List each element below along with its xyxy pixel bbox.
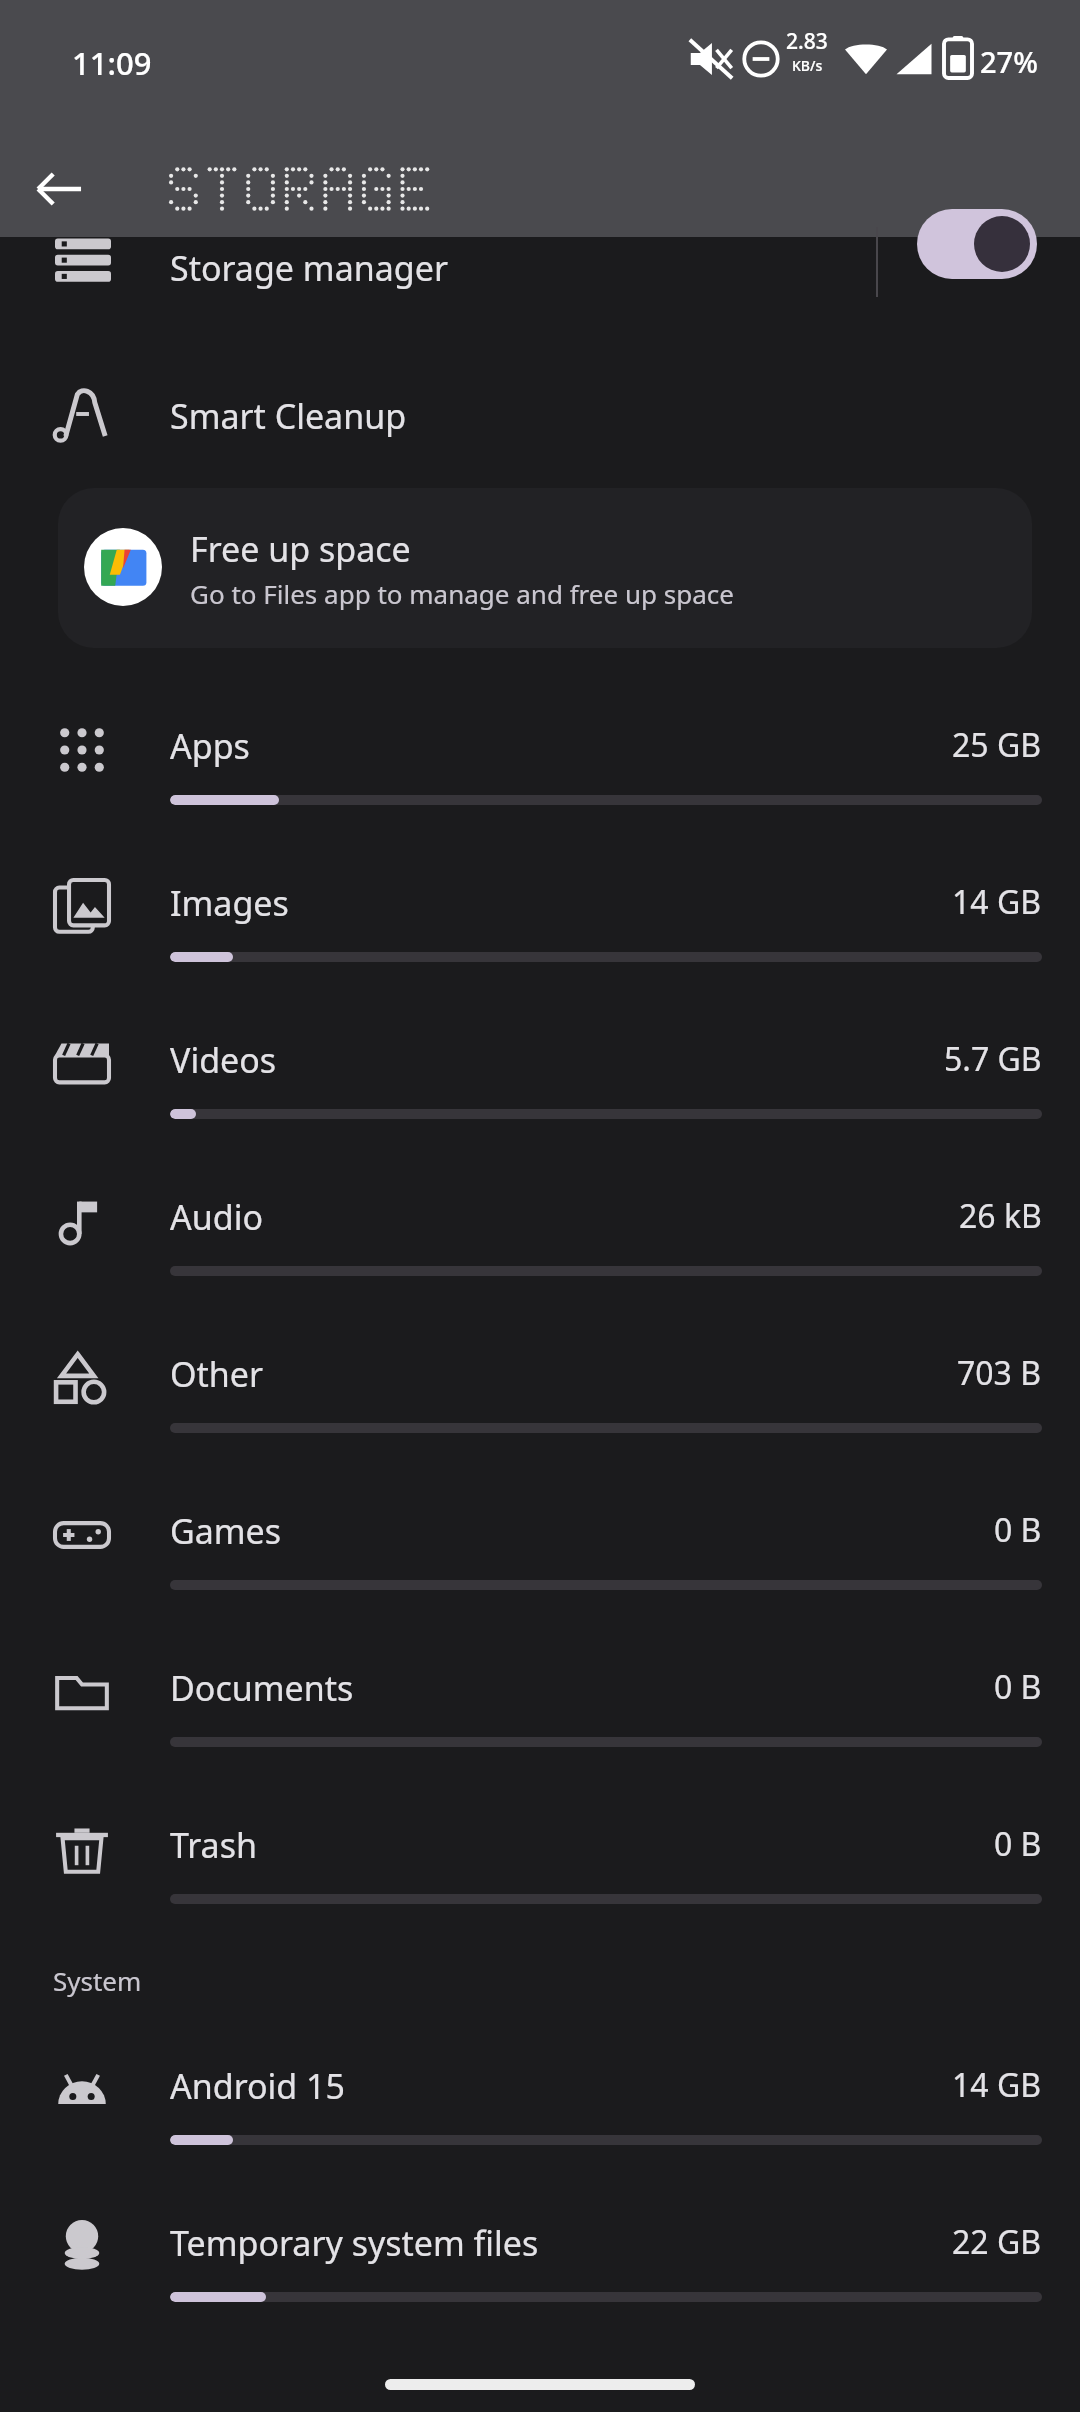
staticText: 2.83	[786, 27, 828, 56]
staticText: 5.7 GB	[944, 1037, 1042, 1081]
staticText: Go to Files app to manage and free up sp…	[190, 576, 734, 611]
button[interactable]: Storage manager toggle	[917, 209, 1037, 279]
button[interactable]: Free up space	[58, 488, 1032, 648]
staticText: Temporary system files	[170, 2220, 539, 2266]
staticText: Games	[170, 1508, 282, 1554]
button[interactable]: Videos	[0, 999, 1080, 1156]
staticText: 27%	[980, 42, 1038, 81]
staticText: 0 B	[994, 1665, 1042, 1709]
staticText: 14 GB	[952, 880, 1042, 924]
staticText: System	[53, 1963, 142, 1998]
button[interactable]: Documents	[0, 1627, 1080, 1784]
staticText: 11:09	[72, 42, 152, 84]
staticText: Documents	[170, 1665, 354, 1711]
staticText: 0 B	[994, 1822, 1042, 1866]
button[interactable]: Android 15	[0, 2025, 1080, 2182]
staticText: Smart Cleanup	[170, 393, 407, 439]
button[interactable]: Audio	[0, 1156, 1080, 1313]
button[interactable]: Temporary system files	[0, 2182, 1080, 2339]
staticText: Storage manager	[170, 245, 448, 291]
staticText: 14 GB	[952, 2063, 1042, 2107]
staticText: Audio	[170, 1194, 263, 1240]
button[interactable]: Apps	[0, 685, 1080, 842]
staticText: 26 kB	[959, 1194, 1042, 1238]
button[interactable]: Games	[0, 1470, 1080, 1627]
staticText: KB/s	[792, 56, 823, 75]
button[interactable]: Images	[0, 842, 1080, 999]
staticText: Videos	[170, 1037, 277, 1083]
staticText: 703 B	[957, 1351, 1042, 1395]
staticText: Android 15	[170, 2063, 345, 2109]
staticText: 22 GB	[952, 2220, 1042, 2264]
staticText: Free up space	[190, 526, 411, 572]
button[interactable]: Back	[30, 160, 88, 218]
button[interactable]: Storage manager	[0, 237, 1080, 367]
staticText: Other	[170, 1351, 264, 1397]
staticText: Trash	[170, 1822, 257, 1868]
button[interactable]: Smart Cleanup	[0, 367, 1080, 488]
button[interactable]: Trash	[0, 1784, 1080, 1941]
staticText: Images	[170, 880, 289, 926]
staticText: 25 GB	[952, 723, 1042, 767]
staticText: 0 B	[994, 1508, 1042, 1552]
staticText: Apps	[170, 723, 250, 769]
button[interactable]: Other	[0, 1313, 1080, 1470]
